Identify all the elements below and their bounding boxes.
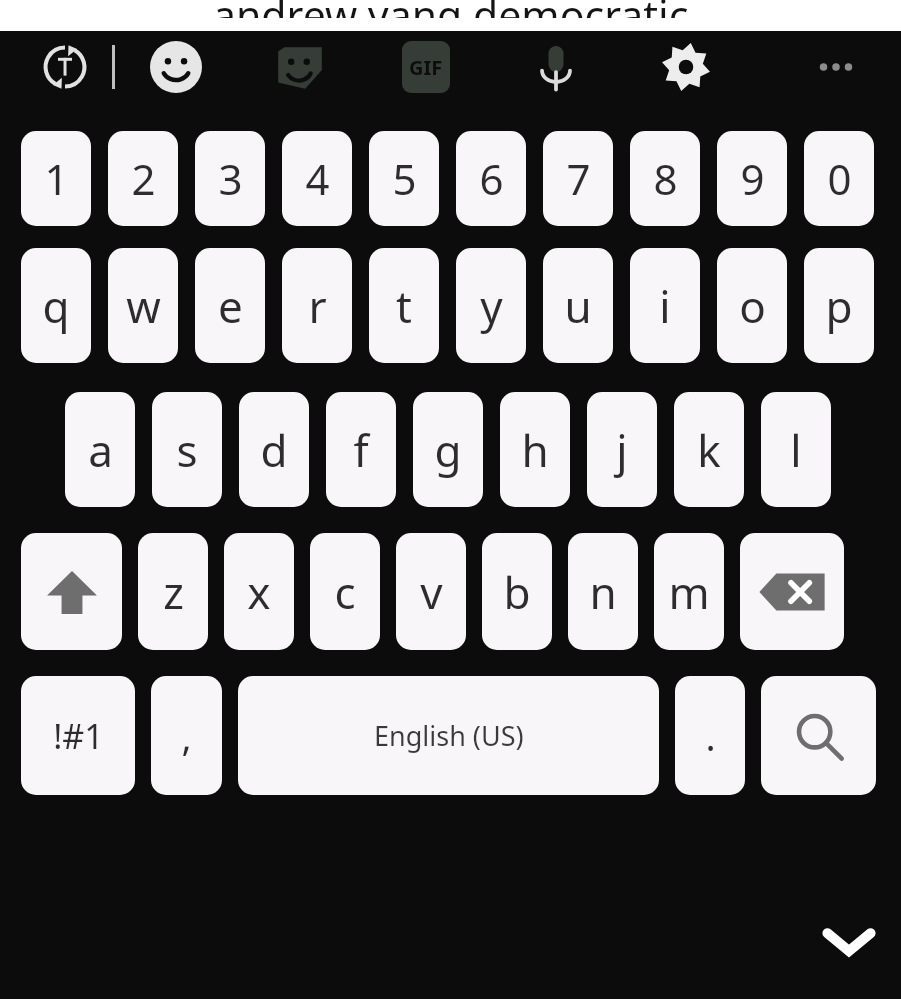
button[interactable]: Hide keyboard [813, 905, 885, 977]
staticText: 5 [392, 150, 417, 207]
button[interactable]: 9 [717, 131, 787, 226]
staticText: z [163, 562, 184, 622]
staticText: i [659, 276, 671, 336]
button[interactable]: , [151, 676, 222, 795]
staticText: u [564, 276, 592, 336]
staticText: s [176, 420, 198, 480]
staticText: d [260, 420, 288, 480]
button[interactable]: f [326, 392, 396, 507]
button[interactable]: o [717, 248, 787, 363]
button[interactable]: Shift [21, 533, 122, 650]
staticText: h [521, 420, 549, 480]
button[interactable]: g [413, 392, 483, 507]
button[interactable]: i [630, 248, 700, 363]
staticText: 2 [131, 150, 156, 207]
button[interactable]: 5 [369, 131, 439, 226]
button[interactable]: 4 [282, 131, 352, 226]
button[interactable]: 7 [543, 131, 613, 226]
button[interactable]: c [310, 533, 380, 650]
staticText: 3 [218, 150, 243, 207]
staticText: 6 [479, 150, 504, 207]
button[interactable]: u [543, 248, 613, 363]
staticText: GIF [409, 54, 443, 81]
staticText: q [42, 276, 70, 336]
button[interactable]: Stickers [263, 31, 337, 103]
staticText: 7 [566, 150, 591, 207]
button[interactable]: English (US) [238, 676, 659, 795]
staticText: 4 [305, 150, 330, 207]
staticText: t [396, 276, 412, 336]
button[interactable]: GIF [389, 31, 463, 103]
button[interactable]: a [65, 392, 135, 507]
staticText: English (US) [374, 717, 524, 754]
staticText: n [589, 562, 617, 622]
button[interactable]: 2 [108, 131, 178, 226]
button[interactable]: Emoji [139, 31, 213, 103]
staticText: 0 [827, 150, 852, 207]
button[interactable]: !#1 [21, 676, 135, 795]
staticText: k [697, 420, 721, 480]
button[interactable]: y [456, 248, 526, 363]
button[interactable]: Search [761, 676, 876, 795]
staticText: andrew yang democratic [213, 0, 689, 18]
button[interactable]: Voice input [519, 31, 593, 103]
button[interactable]: 8 [630, 131, 700, 226]
button[interactable]: w [108, 248, 178, 363]
staticText: 8 [653, 150, 678, 207]
button[interactable]: z [138, 533, 208, 650]
staticText: c [334, 562, 356, 622]
button[interactable]: s [152, 392, 222, 507]
staticText: 1 [44, 150, 69, 207]
button[interactable]: More options [799, 31, 873, 103]
button[interactable]: d [239, 392, 309, 507]
button[interactable]: 6 [456, 131, 526, 226]
staticText: 9 [740, 150, 765, 207]
button[interactable]: Translate [28, 31, 102, 103]
staticText: j [616, 420, 628, 480]
button[interactable]: m [654, 533, 724, 650]
button[interactable]: n [568, 533, 638, 650]
staticText: g [434, 420, 462, 480]
staticText: e [218, 276, 243, 336]
staticText: . [705, 710, 716, 762]
staticText: x [247, 562, 271, 622]
staticText: , [181, 710, 192, 762]
button[interactable]: 0 [804, 131, 874, 226]
button[interactable]: 3 [195, 131, 265, 226]
button[interactable]: p [804, 248, 874, 363]
staticText: r [308, 276, 327, 336]
button[interactable]: k [674, 392, 744, 507]
staticText: v [420, 562, 443, 622]
staticText: b [503, 562, 531, 622]
button[interactable]: h [500, 392, 570, 507]
staticText: l [790, 420, 802, 480]
button[interactable]: Backspace [740, 533, 844, 650]
staticText: y [480, 276, 503, 336]
button[interactable]: v [396, 533, 466, 650]
button[interactable]: 1 [21, 131, 91, 226]
button[interactable]: e [195, 248, 265, 363]
button[interactable]: x [224, 533, 294, 650]
staticText: m [668, 562, 710, 622]
staticText: !#1 [53, 713, 104, 759]
staticText: f [353, 420, 369, 480]
button[interactable]: r [282, 248, 352, 363]
button[interactable]: Settings [649, 31, 723, 103]
staticText: w [126, 276, 161, 336]
button[interactable]: l [761, 392, 831, 507]
button[interactable]: b [482, 533, 552, 650]
button[interactable]: . [675, 676, 745, 795]
button[interactable]: q [21, 248, 91, 363]
staticText: a [88, 420, 113, 480]
staticText: o [739, 276, 766, 336]
staticText: p [825, 276, 853, 336]
button[interactable]: t [369, 248, 439, 363]
button[interactable]: j [587, 392, 657, 507]
